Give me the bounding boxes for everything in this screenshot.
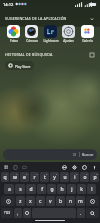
staticText: ?123 (4, 211, 11, 215)
staticText: l (91, 186, 93, 193)
staticText: s (19, 186, 22, 193)
staticText: e (23, 174, 26, 181)
staticText: 0 (96, 172, 98, 175)
button[interactable]: Cuadrícula (3, 164, 9, 170)
staticText: Fotos (10, 39, 18, 43)
button[interactable]: Cámara (23, 24, 40, 44)
button[interactable]: Play Store (5, 61, 34, 70)
button[interactable]: Fotos (5, 24, 22, 44)
staticText: k (80, 186, 83, 193)
staticText: 9 (86, 172, 88, 175)
staticText: a (8, 186, 11, 193)
staticText: Cámara (26, 39, 38, 43)
staticText: v (49, 198, 52, 205)
button[interactable]: r (30, 172, 39, 182)
staticText: 3 (26, 172, 28, 175)
button[interactable]: , (14, 208, 22, 218)
button[interactable]: z (16, 196, 25, 206)
staticText: b (59, 198, 63, 205)
staticText: Galería (82, 39, 93, 43)
button[interactable]: d (26, 184, 36, 194)
button[interactable]: h (57, 184, 66, 194)
button[interactable]: Símbolos (1, 208, 13, 218)
staticText: Play Store (15, 64, 31, 68)
button[interactable]: q (1, 172, 9, 182)
staticText: g (50, 186, 54, 193)
staticText: Lightroom (43, 39, 59, 43)
button[interactable]: g (47, 184, 56, 194)
button[interactable]: w (10, 172, 19, 182)
button[interactable]: Micrófono (91, 164, 97, 170)
button[interactable]: Emoji (23, 208, 31, 218)
button[interactable]: v (46, 196, 55, 206)
button[interactable]: Galería (79, 24, 96, 44)
staticText: p (93, 174, 97, 181)
staticText: 2 (16, 172, 18, 175)
button[interactable]: c (36, 196, 45, 206)
button[interactable]: m (76, 196, 85, 206)
staticText: . (80, 210, 82, 216)
button[interactable]: b (56, 196, 65, 206)
staticText: 8 (76, 172, 78, 175)
button[interactable]: Aplicaciones (3, 149, 97, 160)
button[interactable]: s (15, 184, 25, 194)
button[interactable]: Portapapeles (12, 164, 18, 170)
staticText: x (29, 198, 32, 205)
staticText: 4 (36, 172, 38, 175)
staticText: r (33, 174, 36, 181)
button[interactable]: l (87, 184, 96, 194)
staticText: , (17, 210, 19, 216)
button[interactable]: n (66, 196, 75, 206)
staticText: j (71, 186, 73, 193)
staticText: 1 (6, 172, 8, 175)
staticText: SUGERENCIAS DE LA APLICACIÓN (5, 16, 67, 21)
button[interactable]: x (26, 196, 35, 206)
button[interactable]: f (37, 184, 46, 194)
staticText: Buscar (82, 152, 94, 157)
button[interactable]: Borrar historial (88, 51, 95, 58)
staticText: t (44, 174, 46, 181)
button[interactable]: t (40, 172, 49, 182)
staticText: o (83, 174, 87, 181)
button[interactable]: y (50, 172, 59, 182)
button[interactable]: k (77, 184, 86, 194)
button[interactable]: Ajustes (60, 24, 77, 44)
staticText: w (13, 174, 17, 181)
button[interactable]: i (70, 172, 79, 182)
button[interactable]: GIF (21, 164, 27, 170)
button[interactable]: Lightroom (42, 24, 59, 44)
staticText: Ajustes (63, 39, 74, 43)
staticText: 6 (56, 172, 58, 175)
staticText: 7 (66, 172, 68, 175)
button[interactable]: Emoji (81, 164, 87, 170)
button[interactable]: Mayúsculas (1, 196, 15, 206)
button[interactable]: a (4, 184, 14, 194)
button[interactable]: o (80, 172, 89, 182)
staticText: u (63, 174, 67, 181)
staticText: i (74, 174, 76, 181)
button[interactable]: Aplicaciones (72, 152, 77, 157)
staticText: 14:12 (3, 2, 14, 7)
staticText: z (19, 198, 22, 205)
button[interactable]: Ajustes del teclado (71, 164, 77, 170)
button[interactable]: u (60, 172, 69, 182)
staticText: HISTORIAL DE BÚSQUEDA (5, 52, 53, 57)
button[interactable]: Expandir sugerencias (88, 15, 95, 22)
staticText: c (39, 198, 42, 205)
staticText: 5 (46, 172, 48, 175)
staticText: q (3, 174, 7, 181)
button[interactable]: . (77, 208, 85, 218)
button[interactable]: p (90, 172, 99, 182)
staticText: d (29, 186, 33, 193)
button[interactable]: e (20, 172, 29, 182)
staticText: m (78, 198, 83, 205)
staticText: h (60, 186, 64, 193)
button[interactable]: Retroceso (86, 196, 99, 206)
button[interactable]: j (67, 184, 76, 194)
staticText: f (41, 186, 43, 193)
button[interactable]: Buscar (86, 208, 99, 218)
button[interactable]: Traducir (61, 164, 67, 170)
staticText: n (69, 198, 73, 205)
staticText: y (53, 174, 56, 181)
